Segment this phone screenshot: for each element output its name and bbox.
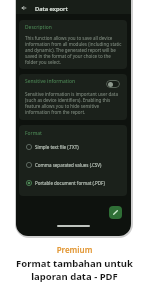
staticText: This function allows you to save all dev… <box>25 35 122 65</box>
button[interactable]: Toggle sensitive information <box>106 80 120 88</box>
staticText: Data export <box>35 5 68 13</box>
button[interactable]: Portable document format (.PDF) <box>26 177 124 189</box>
staticText: Format tambahan untuk laporan data - PDF <box>0 257 149 283</box>
button[interactable]: Edit <box>109 206 122 219</box>
staticText: Simple text file (.TXT) <box>35 144 79 150</box>
staticText: Comma separated values (.CSV) <box>35 162 102 168</box>
staticText: Premium <box>0 244 149 255</box>
staticText: Sensitive information is important user … <box>25 91 119 115</box>
staticText: Description <box>25 24 52 31</box>
button[interactable]: Simple text file (.TXT) <box>26 141 124 153</box>
button[interactable]: Comma separated values (.CSV) <box>26 159 124 171</box>
button[interactable]: Back <box>19 3 29 13</box>
staticText: Portable document format (.PDF) <box>35 180 105 186</box>
staticText: Format <box>25 130 42 137</box>
staticText: Sensitive information <box>25 78 75 85</box>
button[interactable]: Data export <box>35 4 68 13</box>
